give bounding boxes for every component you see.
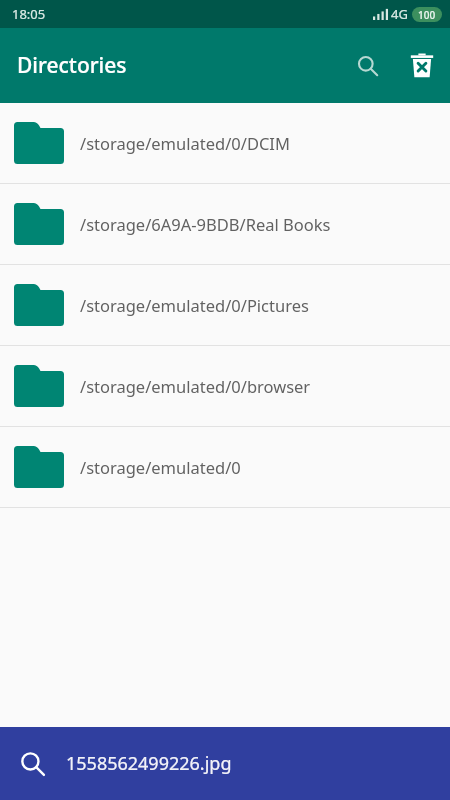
button[interactable]: Search	[342, 40, 394, 92]
button[interactable]: Clear all	[394, 38, 450, 94]
button[interactable]: /storage/emulated/0/DCIM	[0, 103, 450, 183]
staticText: /storage/6A9A-9BDB/Real Books	[80, 213, 331, 235]
button[interactable]: /storage/emulated/0/browser	[0, 346, 450, 426]
button[interactable]: 1558562499226.jpg	[0, 727, 450, 800]
staticText: 18:05	[12, 5, 46, 23]
staticText: /storage/emulated/0	[80, 456, 241, 478]
button[interactable]: /storage/emulated/0/Pictures	[0, 265, 450, 345]
button[interactable]: /storage/emulated/0	[0, 427, 450, 507]
staticText: /storage/emulated/0/browser	[80, 375, 311, 397]
staticText: /storage/emulated/0/Pictures	[80, 294, 309, 316]
staticText: 100	[418, 8, 436, 22]
staticText: /storage/emulated/0/DCIM	[80, 132, 290, 154]
button[interactable]: /storage/6A9A-9BDB/Real Books	[0, 184, 450, 264]
staticText: 1558562499226.jpg	[66, 751, 232, 776]
staticText: 4G	[391, 5, 408, 23]
staticText: Directories	[17, 51, 127, 80]
